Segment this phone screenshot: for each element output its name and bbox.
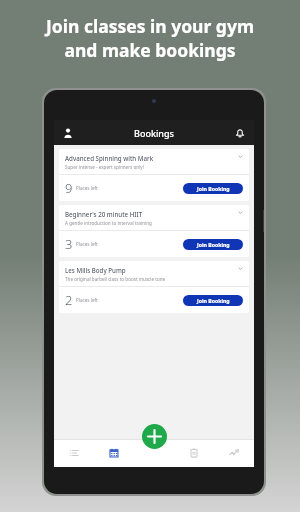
button[interactable]: Join Booking — [183, 239, 243, 250]
button[interactable]: Beginner's 20 minute HIIT — [59, 205, 249, 257]
button[interactable]: Add — [142, 424, 167, 449]
button[interactable]: Advanced Spinning with Mark — [59, 149, 249, 201]
staticText: A gentle introduction to interval traini… — [65, 220, 152, 226]
staticText: Places left — [76, 185, 98, 191]
button[interactable]: Clipboard — [174, 439, 214, 467]
staticText: The original barbell class to boost musc… — [65, 276, 166, 282]
staticText: Join Booking — [197, 185, 230, 192]
staticText: Join Booking — [197, 297, 230, 304]
button[interactable]: List — [54, 439, 94, 467]
button[interactable]: Calendar — [94, 439, 134, 467]
staticText: Join classes in your gym and make bookin… — [0, 14, 300, 62]
staticText: Advanced Spinning with Mark — [65, 154, 154, 162]
button[interactable]: Notifications — [231, 124, 249, 142]
staticText: Places left — [76, 241, 98, 247]
staticText: Join Booking — [197, 241, 230, 248]
button[interactable]: Join Booking — [183, 295, 243, 306]
staticText: 9 — [65, 179, 73, 197]
staticText: Bookings — [134, 127, 174, 139]
button[interactable]: Profile — [59, 124, 77, 142]
staticText: 3 — [65, 235, 73, 253]
staticText: Places left — [76, 297, 98, 303]
button[interactable]: Join Booking — [183, 183, 243, 194]
staticText: Beginner's 20 minute HIIT — [65, 210, 143, 218]
staticText: Super intense - expert spinners only! — [65, 164, 144, 170]
staticText: Les Mills Body Pump — [65, 266, 126, 274]
staticText: 2 — [65, 291, 73, 309]
button[interactable]: Les Mills Body Pump — [59, 261, 249, 313]
button[interactable]: Activity — [214, 439, 254, 467]
